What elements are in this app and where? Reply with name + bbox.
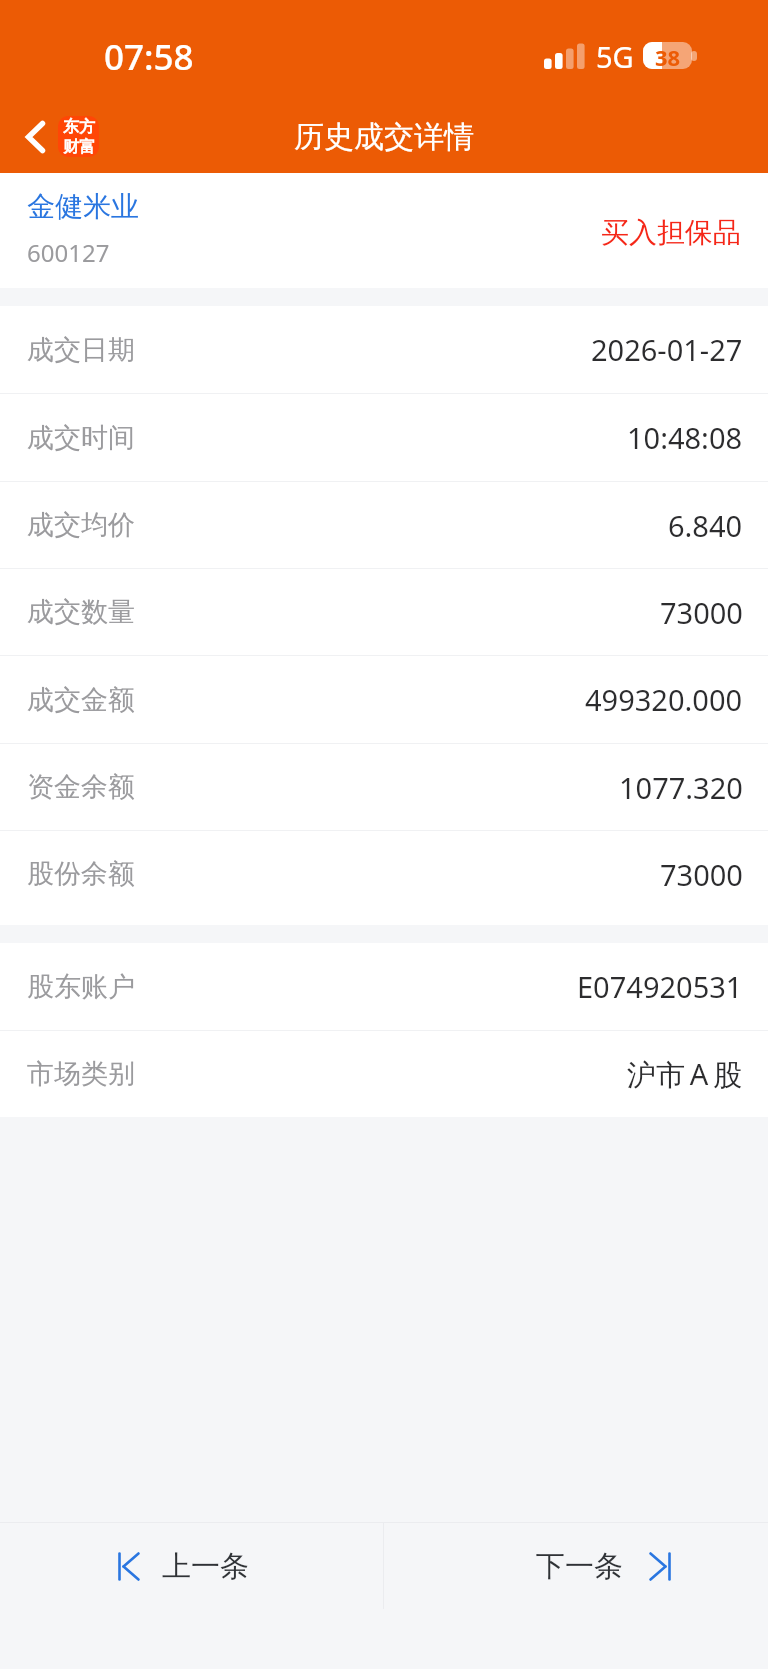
staticText: 07:58 (104, 33, 194, 81)
button[interactable]: 上一条 (0, 1523, 383, 1609)
staticText: 10:48:08 (627, 418, 743, 457)
button[interactable]: 股东账户 (0, 943, 768, 1030)
staticText: 499320.000 (585, 680, 743, 719)
staticText: 成交数量 (27, 595, 135, 629)
staticText: 6.840 (668, 506, 743, 545)
staticText: 上一条 (162, 1548, 249, 1585)
staticText: 成交均价 (27, 508, 135, 542)
staticText: 资金余额 (27, 770, 135, 804)
button[interactable]: 资金余额 (0, 744, 768, 830)
staticText: 市场类别 (27, 1057, 135, 1091)
button[interactable]: 股份余额 (0, 831, 768, 917)
staticText: 下一条 (536, 1548, 623, 1585)
button[interactable]: 成交金额 (0, 656, 768, 743)
staticText: 沪市 A 股 (627, 1054, 743, 1094)
staticText: 股份余额 (27, 857, 135, 891)
staticText: E074920531 (577, 967, 743, 1006)
staticText: 东方 (63, 117, 95, 137)
staticText: 历史成交详情 (294, 118, 474, 156)
staticText: 成交金额 (27, 683, 135, 717)
button[interactable]: Back (4, 108, 111, 165)
staticText: 2026-01-27 (591, 330, 743, 369)
staticText: 5G (596, 37, 634, 76)
staticText: 财富 (63, 137, 95, 157)
button[interactable]: 下一条 (384, 1523, 768, 1609)
staticText: 1077.320 (619, 768, 743, 807)
staticText: 73000 (660, 855, 743, 894)
staticText: 38 (655, 42, 681, 69)
button[interactable]: 成交日期 (0, 306, 768, 393)
staticText: 成交日期 (27, 333, 135, 367)
staticText: 600127 (27, 236, 110, 269)
button[interactable]: 成交时间 (0, 394, 768, 481)
staticText: 金健米业 (27, 189, 139, 224)
button[interactable]: 成交数量 (0, 569, 768, 655)
button[interactable]: 成交均价 (0, 482, 768, 568)
staticText: 股东账户 (27, 970, 135, 1004)
staticText: 73000 (660, 593, 743, 632)
button[interactable]: 市场类别 (0, 1031, 768, 1117)
staticText: 买入担保品 (601, 215, 741, 250)
staticText: 成交时间 (27, 421, 135, 455)
